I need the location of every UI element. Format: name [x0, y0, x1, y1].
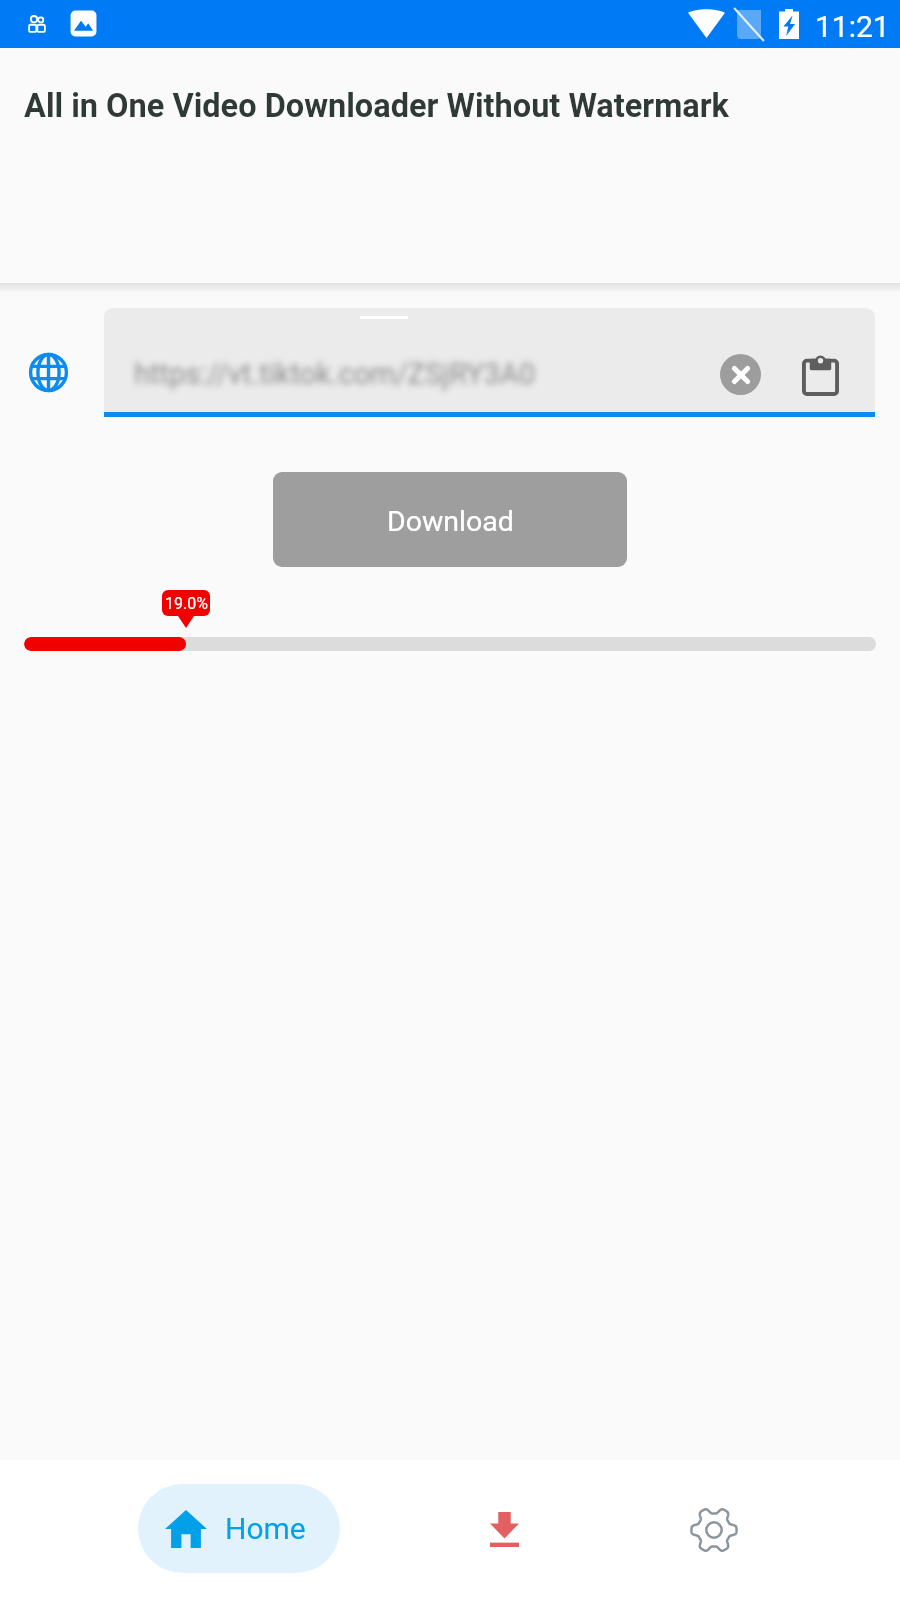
button[interactable]: Home: [138, 1484, 340, 1573]
staticText: 19.0%: [165, 594, 208, 613]
button[interactable]: https://vt.tiktok.com/ZSjRY3A0: [104, 308, 875, 418]
staticText: All in One Video Downloader Without Wate…: [24, 87, 729, 125]
button[interactable]: Open browser: [24, 348, 72, 396]
staticText: Download: [387, 505, 514, 538]
button[interactable]: Downloads: [468, 1493, 540, 1565]
button[interactable]: Paste from clipboard: [788, 343, 852, 407]
button[interactable]: Clear text: [720, 354, 761, 395]
staticText: 11:21: [815, 9, 890, 44]
button[interactable]: Settings: [678, 1494, 750, 1566]
button[interactable]: Download: [273, 472, 627, 567]
staticText: https://vt.tiktok.com/ZSjRY3A0: [134, 357, 536, 391]
staticText: Home: [225, 1511, 306, 1546]
